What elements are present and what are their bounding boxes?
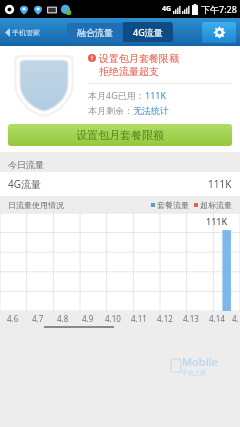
staticText: 下午7:28 <box>201 3 237 15</box>
staticText: 4G流量 <box>8 177 41 191</box>
staticText: 4.8 <box>57 313 69 324</box>
button[interactable]: 4G流量 <box>123 22 173 42</box>
staticText: 4G流量 <box>133 26 163 38</box>
button[interactable]: 融合流量 <box>67 23 123 42</box>
staticText: 4.7 <box>32 313 44 324</box>
staticText: 4.9 <box>82 313 94 324</box>
button[interactable]: 4G流量 <box>0 172 240 196</box>
button[interactable]: 设置包月套餐限额 <box>8 124 232 146</box>
staticText: 111K <box>145 89 167 101</box>
staticText: 4.14 <box>209 313 225 324</box>
staticText: 4.10 <box>105 313 121 324</box>
staticText: 手机之家 <box>182 369 206 377</box>
staticText: 本月4G已用： <box>88 89 145 101</box>
staticText: 拒绝流量超支 <box>99 65 159 78</box>
staticText: 今日流量 <box>8 159 44 170</box>
staticText: 4G <box>162 4 172 14</box>
staticText: 日流量使用情况 <box>8 200 64 210</box>
staticText: Mobile <box>182 354 218 369</box>
staticText: 设置包月套餐限额 <box>76 128 164 142</box>
staticText: 4.11 <box>131 313 147 324</box>
staticText: 111K <box>208 177 232 191</box>
staticText: 4.12 <box>157 313 173 324</box>
button[interactable]: 设置 <box>202 22 236 43</box>
staticText: 融合流量 <box>77 27 113 38</box>
staticText: 4.6 <box>7 313 19 324</box>
staticText: 本月剩余： <box>88 105 133 116</box>
staticText: 无法统计 <box>133 105 169 116</box>
staticText: 4.13 <box>183 313 199 324</box>
staticText: 套餐流量 <box>157 200 189 210</box>
staticText: 超标流量 <box>200 200 232 210</box>
button[interactable]: 手机管家 <box>2 25 43 40</box>
staticText: 设置包月套餐限额 <box>99 52 179 65</box>
staticText: 111K <box>206 215 228 227</box>
staticText: 手机管家 <box>12 28 40 37</box>
staticText: 4. <box>232 313 239 324</box>
